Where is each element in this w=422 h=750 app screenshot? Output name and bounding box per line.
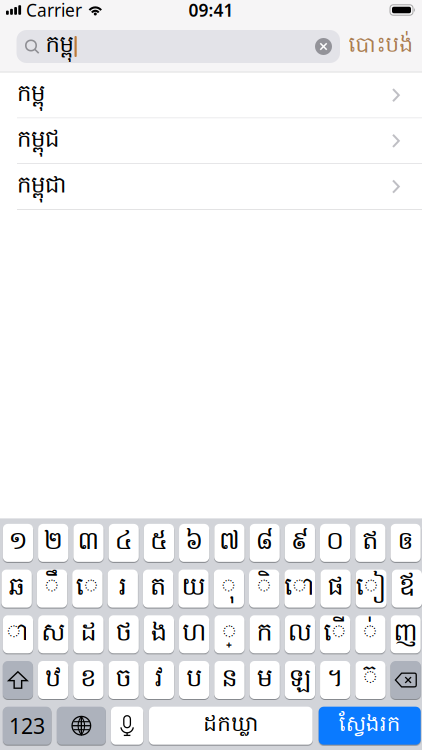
- staticText: ៤: [115, 525, 133, 561]
- staticText: ៀ: [356, 570, 387, 607]
- button[interactable]: ន: [214, 661, 245, 699]
- staticText: ្: [222, 616, 237, 652]
- button[interactable]: ៦: [179, 524, 209, 562]
- button[interactable]: ប: [179, 661, 209, 699]
- button[interactable]: ៩: [285, 524, 315, 562]
- button[interactable]: Space: [149, 707, 313, 745]
- staticText: ១: [8, 525, 27, 561]
- button[interactable]: Clear text: [315, 38, 332, 55]
- staticText: ើ: [324, 616, 347, 652]
- staticText: កម្ពុជ: [17, 125, 59, 157]
- button[interactable]: ឆ: [1, 570, 32, 608]
- button[interactable]: ើ: [320, 615, 350, 653]
- button[interactable]: កម្ពុជ: [0, 118, 422, 164]
- staticText: ផ: [327, 570, 343, 607]
- button[interactable]: ៤: [109, 524, 139, 562]
- button[interactable]: ដ: [73, 615, 103, 653]
- button[interactable]: ា: [3, 615, 33, 653]
- staticText: ស: [41, 616, 65, 652]
- button[interactable]: ខ: [73, 661, 103, 699]
- staticText: ម: [257, 662, 273, 698]
- staticText: ា: [6, 616, 29, 652]
- button[interactable]: ឲ: [390, 524, 421, 562]
- staticText: ឲ: [398, 525, 414, 561]
- button[interactable]: ថ: [109, 615, 139, 653]
- button[interactable]: ៥: [144, 524, 174, 562]
- button[interactable]: ផ: [320, 570, 351, 608]
- button[interactable]: ង: [144, 615, 174, 653]
- button[interactable]: រ: [107, 570, 138, 608]
- staticText: ០: [326, 525, 344, 561]
- staticText: បោះបង់: [348, 31, 413, 62]
- staticText: ។: [327, 662, 344, 698]
- button[interactable]: ៣: [73, 524, 103, 562]
- staticText: កម្ពុ: [45, 30, 73, 63]
- staticText: យ: [181, 570, 205, 607]
- button[interactable]: ឋ: [38, 661, 68, 699]
- staticText: ោ: [284, 570, 315, 607]
- button[interactable]: ក: [249, 615, 280, 653]
- staticText: េ: [76, 570, 99, 607]
- button[interactable]: ត: [143, 570, 173, 608]
- button[interactable]: ុ: [214, 570, 244, 608]
- staticText: រ: [119, 570, 127, 607]
- button[interactable]: ០: [320, 524, 350, 562]
- staticText: ឪ: [399, 570, 415, 607]
- button[interactable]: ២: [38, 524, 68, 562]
- button[interactable]: បោះបង់: [340, 30, 422, 63]
- staticText: ច: [116, 662, 132, 698]
- staticText: ថ: [116, 616, 132, 652]
- button[interactable]: កម្ពុជា: [0, 164, 422, 210]
- button[interactable]: ៧: [214, 524, 244, 562]
- button[interactable]: ល: [285, 615, 315, 653]
- button[interactable]: ស: [38, 615, 68, 653]
- staticText: 09:41: [188, 0, 233, 21]
- staticText: ់: [363, 616, 378, 652]
- button[interactable]: វ: [144, 661, 174, 699]
- button[interactable]: ិ: [249, 570, 279, 608]
- button[interactable]: ៨: [249, 524, 280, 562]
- staticText: ល: [288, 616, 312, 652]
- staticText: ិ: [257, 570, 272, 607]
- staticText: ឋ: [45, 662, 61, 698]
- button[interactable]: ញ: [390, 615, 421, 653]
- staticText: ុ: [221, 570, 236, 607]
- staticText: 123: [9, 711, 45, 740]
- staticText: ៣: [77, 525, 99, 561]
- button[interactable]: ្: [214, 615, 244, 653]
- button[interactable]: ឡ: [285, 661, 315, 699]
- button[interactable]: ៀ: [356, 570, 387, 608]
- button[interactable]: េ: [72, 570, 103, 608]
- staticText: ប: [186, 662, 202, 698]
- button[interactable]: ឹ: [37, 570, 67, 608]
- button[interactable]: ោ: [284, 570, 315, 608]
- button[interactable]: ១: [3, 524, 33, 562]
- staticText: ២: [44, 525, 63, 561]
- staticText: កម្ពុជា: [17, 171, 66, 203]
- staticText: ស្វែងរក: [339, 710, 401, 741]
- button[interactable]: យ: [178, 570, 209, 608]
- button[interactable]: ឪ: [392, 570, 422, 608]
- button[interactable]: ៊: [355, 661, 386, 699]
- staticText: ៥: [150, 525, 168, 561]
- staticText: ក: [257, 616, 273, 652]
- staticText: Carrier: [26, 0, 82, 21]
- staticText: ដ: [80, 616, 96, 652]
- button[interactable]: ច: [108, 661, 139, 699]
- button[interactable]: Search: [319, 707, 421, 745]
- button[interactable]: ឥ: [355, 524, 385, 562]
- button[interactable]: Next keyboard: [57, 707, 106, 745]
- button[interactable]: Shift: [3, 661, 33, 699]
- button[interactable]: ។: [320, 661, 350, 699]
- staticText: ៊: [363, 662, 378, 698]
- staticText: ន: [221, 662, 237, 698]
- button[interactable]: ហ: [179, 615, 209, 653]
- button[interactable]: កម្ពុ: [0, 73, 422, 118]
- button[interactable]: ់: [355, 615, 385, 653]
- staticText: ឹ: [44, 570, 59, 607]
- button[interactable]: Delete: [391, 661, 421, 699]
- button[interactable]: ម: [249, 661, 280, 699]
- button[interactable]: Numbers: [3, 707, 51, 745]
- button[interactable]: Dictation: [111, 707, 143, 745]
- staticText: ដកឃ្លា: [203, 710, 258, 741]
